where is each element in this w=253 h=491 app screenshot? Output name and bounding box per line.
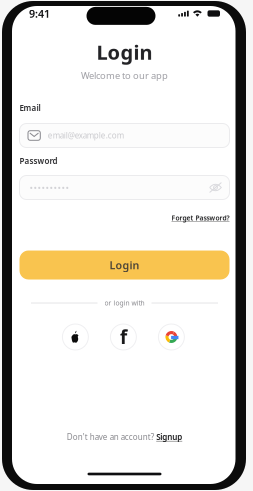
staticText: Welcome to our app bbox=[81, 69, 168, 82]
staticText: Signup bbox=[156, 432, 182, 442]
button[interactable]: Forget Password? bbox=[19, 214, 229, 222]
staticText: Don't have an account? bbox=[67, 432, 154, 442]
button[interactable]: email@example.com bbox=[19, 123, 229, 147]
staticText: 9:41 bbox=[29, 6, 50, 21]
button[interactable]: Sign in with Facebook bbox=[110, 324, 136, 350]
button[interactable]: •••••••••• bbox=[19, 175, 229, 199]
staticText: f bbox=[120, 325, 127, 349]
button[interactable]: Don't have an account? bbox=[67, 432, 182, 442]
staticText: Forget Password? bbox=[171, 214, 229, 222]
staticText: Email bbox=[19, 103, 40, 113]
button[interactable]: Login bbox=[19, 250, 229, 279]
staticText: Login bbox=[96, 39, 152, 65]
staticText: Password bbox=[19, 156, 57, 166]
staticText: •••••••••• bbox=[29, 181, 69, 194]
staticText: email@example.com bbox=[48, 130, 124, 141]
staticText: or login with bbox=[104, 299, 144, 307]
staticText: Login bbox=[109, 258, 139, 272]
button[interactable]: Sign in with Apple bbox=[62, 324, 88, 350]
button[interactable]: Sign in with Google bbox=[158, 324, 184, 350]
